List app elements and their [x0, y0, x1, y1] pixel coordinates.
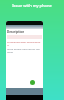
staticText: Something went wrong with it — [7, 40, 42, 46]
button[interactable]: Compose — [30, 80, 35, 85]
staticText: Description — [7, 30, 25, 34]
staticText: More details here about the issue — [7, 47, 42, 53]
button[interactable]: Issue with my phone — [0, 0, 64, 10]
staticText: Issue with my phone — [12, 3, 52, 8]
